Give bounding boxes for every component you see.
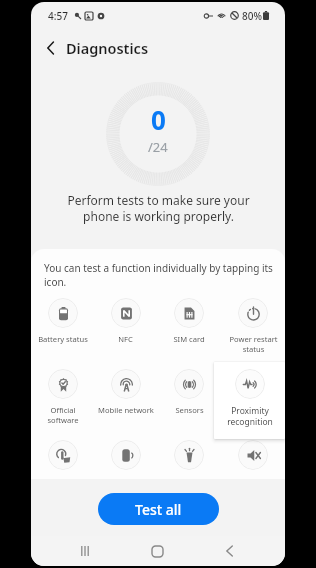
staticText: Perform tests to make sure your phone is… (67, 192, 250, 225)
button[interactable]: Flash (157, 440, 221, 479)
staticText: 0 (151, 102, 166, 137)
button[interactable]: NFC (94, 298, 157, 353)
button[interactable]: Official software (31, 369, 94, 424)
button[interactable]: Back (214, 536, 244, 566)
button[interactable]: Test all (98, 493, 219, 525)
staticText: Sensors (175, 405, 204, 415)
button[interactable]: Mobile network (94, 369, 157, 424)
button[interactable]: SIM card (157, 298, 221, 353)
button[interactable]: Recents (70, 536, 100, 566)
button[interactable]: Tilt (94, 440, 157, 479)
button[interactable]: Touch screen (31, 440, 94, 479)
button[interactable]: Battery status (31, 298, 94, 353)
staticText: Mobile network (98, 405, 154, 415)
button[interactable]: Speaker (221, 440, 285, 479)
button[interactable]: Home (142, 536, 172, 566)
button[interactable]: Sensors (157, 369, 221, 424)
staticText: Diagnostics (66, 38, 149, 58)
staticText: 80% (242, 9, 262, 23)
button[interactable]: Back (36, 34, 64, 62)
button[interactable]: Proximity recognition (221, 369, 285, 424)
staticText: Proximity recognition (227, 405, 273, 427)
button[interactable]: Power restart status (221, 298, 285, 353)
staticText: Power restart status (229, 334, 278, 353)
staticText: 4:57 (48, 9, 68, 23)
staticText: Test all (135, 500, 182, 519)
button[interactable]: Proximity recognition (214, 362, 285, 439)
staticText: Battery status (38, 334, 88, 344)
staticText: You can test a function individually by … (44, 261, 281, 289)
staticText: Proximity recognition (233, 405, 274, 424)
staticText: SIM card (173, 334, 205, 344)
staticText: NFC (118, 334, 133, 344)
staticText: /24 (148, 138, 168, 156)
staticText: Official software (47, 405, 79, 424)
